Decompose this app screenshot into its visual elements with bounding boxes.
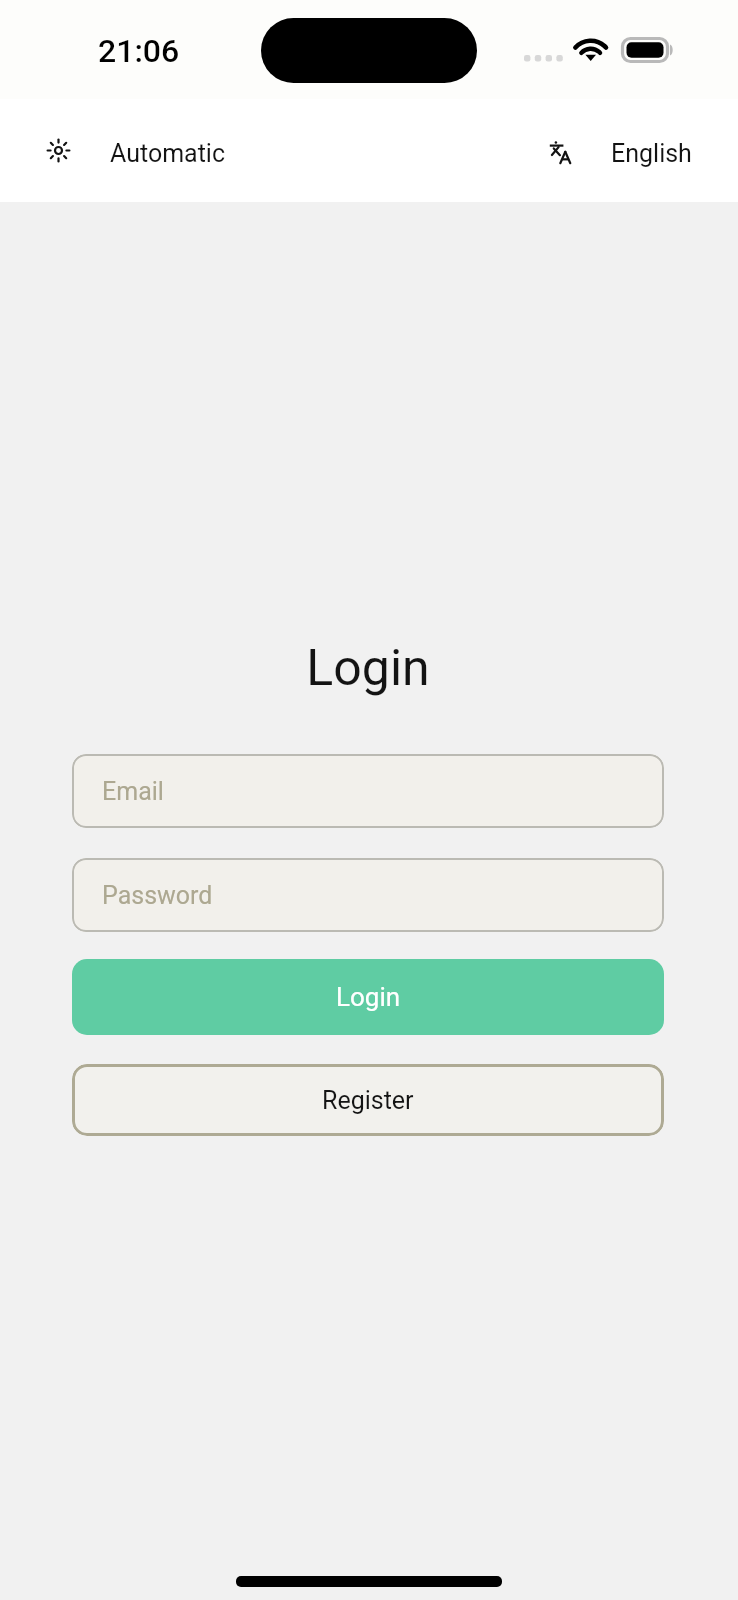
button[interactable]: Register [72, 1064, 664, 1136]
staticText: Register [322, 1086, 414, 1115]
staticText: Login [306, 639, 430, 698]
staticText: Password [102, 881, 213, 910]
other: Brightness [47, 139, 70, 162]
staticText: Email [102, 777, 164, 806]
button[interactable]: Login [72, 959, 664, 1035]
button[interactable]: Password [72, 858, 664, 932]
staticText: Automatic [110, 139, 226, 168]
staticText: 21:06 [98, 32, 180, 70]
button[interactable]: Brightness [0, 114, 242, 187]
staticText: English [611, 139, 692, 168]
other: Language [548, 141, 571, 164]
button[interactable]: Language [531, 114, 738, 187]
staticText: Login [336, 982, 401, 1012]
button[interactable]: Email [72, 754, 664, 828]
